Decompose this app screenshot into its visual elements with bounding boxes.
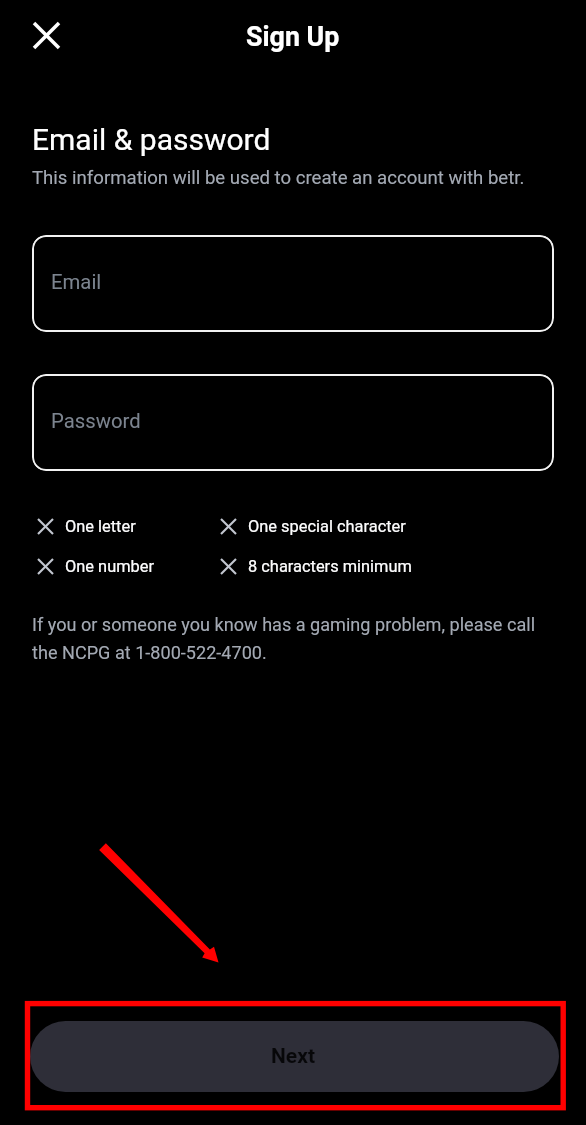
staticText: One letter [65,517,136,536]
staticText: One number [65,557,154,576]
staticText: Email [51,270,102,294]
staticText: Email & password [32,122,271,157]
staticText: Next [271,1044,315,1069]
staticText: Password [51,409,141,433]
staticText: If you or someone you know has a gaming … [32,614,554,664]
button[interactable]: Password [32,374,554,471]
staticText: Sign Up [246,21,340,52]
button[interactable]: Close [22,11,70,59]
staticText: This information will be used to create … [32,167,525,189]
button[interactable]: Email [32,235,554,332]
staticText: One special character [248,517,406,536]
button[interactable]: Next [30,1021,559,1092]
staticText: 8 characters minimum [248,557,412,576]
